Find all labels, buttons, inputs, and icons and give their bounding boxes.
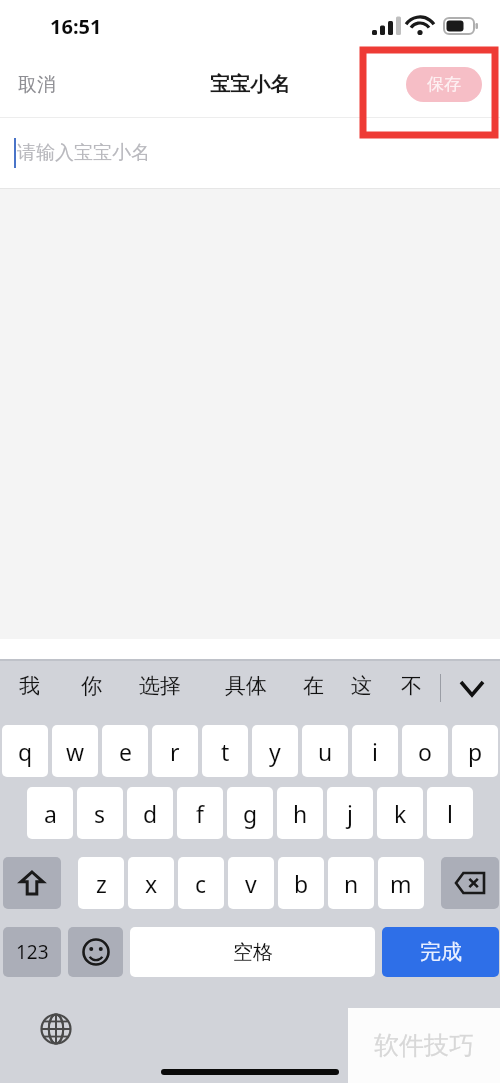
- button[interactable]: q: [2, 725, 48, 777]
- staticText: 空格: [233, 940, 273, 965]
- button[interactable]: f: [177, 787, 223, 839]
- button[interactable]: 我: [16, 669, 43, 703]
- staticText: a: [44, 798, 57, 829]
- button[interactable]: l: [427, 787, 473, 839]
- button[interactable]: 不: [398, 669, 425, 703]
- staticText: 完成: [420, 939, 462, 965]
- button[interactable]: c: [178, 857, 224, 909]
- button[interactable]: t: [202, 725, 248, 777]
- button[interactable]: b: [278, 857, 324, 909]
- staticText: w: [66, 736, 85, 767]
- button[interactable]: g: [227, 787, 273, 839]
- button[interactable]: v: [228, 857, 274, 909]
- button[interactable]: 请输入宝宝小名: [0, 118, 500, 188]
- staticText: k: [394, 798, 407, 829]
- button[interactable]: w: [52, 725, 98, 777]
- button[interactable]: i: [352, 725, 398, 777]
- staticText: x: [145, 868, 158, 899]
- staticText: 我: [19, 673, 40, 699]
- button[interactable]: 123: [3, 927, 61, 977]
- staticText: 软件技巧: [374, 1030, 474, 1061]
- staticText: i: [372, 736, 378, 767]
- button[interactable]: 具体: [222, 669, 270, 703]
- button[interactable]: u: [302, 725, 348, 777]
- button[interactable]: y: [252, 725, 298, 777]
- staticText: r: [170, 736, 180, 767]
- button[interactable]: 在: [300, 669, 327, 703]
- staticText: u: [318, 736, 333, 767]
- button[interactable]: Backspace: [441, 857, 499, 909]
- staticText: f: [196, 798, 204, 829]
- button[interactable]: p: [452, 725, 498, 777]
- button[interactable]: d: [127, 787, 173, 839]
- staticText: y: [269, 736, 281, 767]
- staticText: 取消: [18, 73, 56, 97]
- staticText: p: [468, 736, 483, 767]
- button[interactable]: a: [27, 787, 73, 839]
- staticText: 不: [401, 673, 422, 699]
- button[interactable]: 完成: [382, 927, 499, 977]
- button[interactable]: Hide keyboard: [452, 667, 492, 709]
- staticText: 保存: [427, 74, 461, 95]
- button[interactable]: 取消: [0, 61, 74, 109]
- staticText: 16:51: [50, 13, 102, 40]
- staticText: z: [96, 868, 107, 899]
- staticText: t: [221, 736, 230, 767]
- staticText: 你: [81, 673, 102, 699]
- staticText: l: [447, 798, 453, 829]
- button[interactable]: m: [378, 857, 424, 909]
- button[interactable]: z: [78, 857, 124, 909]
- button[interactable]: 这: [348, 669, 375, 703]
- button[interactable]: 保存: [406, 67, 482, 102]
- button[interactable]: x: [128, 857, 174, 909]
- button[interactable]: e: [102, 725, 148, 777]
- button[interactable]: k: [377, 787, 423, 839]
- button[interactable]: 你: [78, 669, 105, 703]
- button[interactable]: h: [277, 787, 323, 839]
- button[interactable]: Emoji: [68, 927, 123, 977]
- staticText: d: [143, 798, 158, 829]
- staticText: h: [293, 798, 308, 829]
- staticText: j: [347, 798, 353, 829]
- staticText: v: [245, 868, 257, 899]
- staticText: 具体: [225, 673, 267, 699]
- staticText: 在: [303, 673, 324, 699]
- staticText: g: [243, 798, 258, 829]
- button[interactable]: s: [77, 787, 123, 839]
- staticText: 请输入宝宝小名: [17, 141, 150, 165]
- staticText: e: [119, 736, 132, 767]
- button[interactable]: Shift: [3, 857, 61, 909]
- staticText: 123: [16, 939, 49, 965]
- staticText: b: [294, 868, 309, 899]
- staticText: q: [18, 736, 33, 767]
- staticText: 选择: [139, 673, 181, 699]
- staticText: 这: [351, 673, 372, 699]
- staticText: n: [344, 868, 359, 899]
- staticText: 宝宝小名: [210, 72, 290, 97]
- staticText: m: [390, 868, 412, 899]
- button[interactable]: 选择: [136, 669, 184, 703]
- button[interactable]: 空格: [130, 927, 375, 977]
- button[interactable]: j: [327, 787, 373, 839]
- staticText: s: [94, 798, 106, 829]
- button[interactable]: n: [328, 857, 374, 909]
- button[interactable]: r: [152, 725, 198, 777]
- staticText: o: [418, 736, 432, 767]
- button[interactable]: Switch language: [32, 1005, 80, 1053]
- staticText: c: [195, 868, 207, 899]
- button[interactable]: o: [402, 725, 448, 777]
